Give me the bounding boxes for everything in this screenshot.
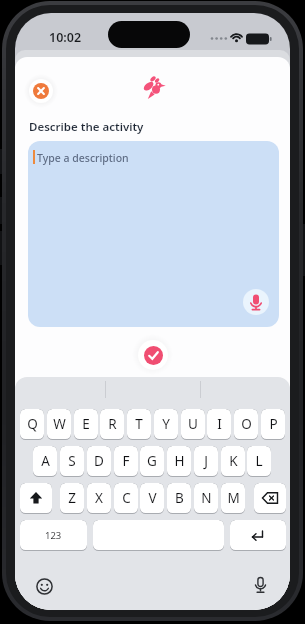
button[interactable]: P: [261, 409, 285, 440]
staticText: I: [217, 415, 222, 433]
button[interactable]: O: [234, 409, 258, 440]
staticText: U: [188, 415, 198, 433]
button[interactable]: E: [74, 409, 98, 440]
button[interactable]: [20, 483, 52, 514]
staticText: L: [255, 452, 263, 470]
staticText: Y: [162, 415, 170, 433]
button[interactable]: [138, 340, 168, 370]
staticText: T: [135, 415, 143, 433]
staticText: N: [201, 489, 212, 507]
button[interactable]: [243, 289, 269, 315]
button[interactable]: U: [181, 409, 205, 440]
staticText: K: [229, 452, 238, 470]
staticText: Z: [68, 489, 76, 507]
staticText: V: [148, 489, 157, 507]
button[interactable]: M: [221, 483, 245, 514]
button[interactable]: H: [167, 446, 191, 477]
button[interactable]: W: [47, 409, 71, 440]
staticText: E: [82, 415, 90, 433]
button[interactable]: [36, 578, 53, 595]
button[interactable]: [252, 576, 269, 595]
staticText: J: [204, 452, 208, 470]
staticText: R: [108, 415, 117, 433]
button[interactable]: Z: [60, 483, 84, 514]
staticText: F: [122, 452, 130, 470]
staticText: Q: [27, 415, 38, 433]
button[interactable]: D: [87, 446, 111, 477]
button[interactable]: R: [100, 409, 124, 440]
staticText: Describe the activity: [29, 119, 144, 135]
button[interactable]: [29, 79, 53, 103]
staticText: P: [269, 415, 278, 433]
button[interactable]: N: [194, 483, 218, 514]
button[interactable]: X: [87, 483, 111, 514]
staticText: 123: [45, 529, 62, 542]
staticText: O: [241, 415, 252, 433]
staticText: Type a description: [37, 151, 129, 165]
button[interactable]: S: [60, 446, 84, 477]
staticText: D: [94, 452, 104, 470]
staticText: G: [147, 452, 157, 470]
staticText: H: [174, 452, 185, 470]
staticText: M: [227, 489, 240, 507]
button[interactable]: 123: [20, 520, 87, 551]
button[interactable]: [93, 520, 224, 551]
button[interactable]: Q: [20, 409, 44, 440]
button[interactable]: F: [114, 446, 138, 477]
button[interactable]: Y: [154, 409, 178, 440]
staticText: 10:02: [49, 29, 82, 45]
staticText: A: [41, 452, 50, 470]
button[interactable]: T: [127, 409, 151, 440]
button[interactable]: G: [140, 446, 164, 477]
button[interactable]: C: [114, 483, 138, 514]
button[interactable]: [254, 483, 286, 514]
button[interactable]: [230, 520, 286, 551]
button[interactable]: K: [221, 446, 245, 477]
button[interactable]: J: [194, 446, 218, 477]
button[interactable]: B: [167, 483, 191, 514]
button[interactable]: I: [207, 409, 231, 440]
staticText: C: [122, 489, 131, 507]
staticText: X: [95, 489, 103, 507]
staticText: S: [68, 452, 76, 470]
button[interactable]: L: [247, 446, 271, 477]
staticText: W: [53, 415, 66, 433]
staticText: B: [175, 489, 184, 507]
button[interactable]: Type a description: [28, 141, 279, 327]
button[interactable]: V: [140, 483, 164, 514]
button[interactable]: A: [33, 446, 57, 477]
